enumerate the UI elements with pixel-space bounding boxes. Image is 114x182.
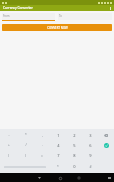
- button[interactable]: Back: [36, 175, 42, 181]
- staticText: Currency Converter: [3, 6, 33, 10]
- button[interactable]: 1: [50, 130, 66, 140]
- staticText: /: [25, 143, 27, 147]
- button[interactable]: 6: [82, 140, 98, 150]
- button[interactable]: =: [34, 150, 50, 161]
- staticText: *: [57, 165, 59, 169]
- button[interactable]: 7: [50, 150, 66, 161]
- button[interactable]: CONVERT NOW: [2, 24, 112, 31]
- staticText: 7: [57, 153, 60, 158]
- button[interactable]: Home: [57, 175, 63, 181]
- staticText: 4: [57, 143, 60, 148]
- button[interactable]: (: [0, 150, 17, 161]
- button[interactable]: From: [2, 13, 55, 21]
- staticText: ): [25, 154, 26, 158]
- button[interactable]: 5: [66, 140, 82, 150]
- button[interactable]: Enter: [98, 140, 114, 150]
- button[interactable]: 8: [66, 150, 82, 161]
- staticText: CONVERT NOW: [47, 26, 68, 30]
- staticText: -: [8, 133, 10, 137]
- button[interactable]: 4: [50, 140, 66, 150]
- button[interactable]: Recent apps: [76, 175, 82, 181]
- staticText: *: [25, 133, 27, 137]
- staticText: +: [8, 143, 10, 147]
- button[interactable]: /: [17, 140, 34, 150]
- button[interactable]: 0: [66, 161, 82, 172]
- staticText: 0: [73, 164, 76, 169]
- button[interactable]: 3: [82, 130, 98, 140]
- staticText: ,: [42, 133, 43, 137]
- staticText: 3: [89, 133, 92, 138]
- button[interactable]: *: [50, 161, 66, 172]
- button[interactable]: 9: [82, 150, 98, 161]
- staticText: 2: [73, 133, 76, 138]
- staticText: #: [89, 165, 92, 169]
- staticText: From: [3, 14, 10, 18]
- button[interactable]: Hide keyboard: [107, 175, 112, 180]
- button[interactable]: ): [17, 150, 34, 161]
- button[interactable]: #: [82, 161, 98, 172]
- staticText: 9: [89, 153, 92, 158]
- button[interactable]: *: [17, 130, 34, 140]
- staticText: =: [41, 154, 43, 158]
- button[interactable]: Space: [0, 161, 50, 172]
- staticText: 6: [89, 143, 92, 148]
- staticText: To: [59, 14, 62, 18]
- staticText: .: [42, 143, 43, 147]
- button[interactable]: 2: [66, 130, 82, 140]
- staticText: 8: [73, 153, 76, 158]
- button[interactable]: +: [0, 140, 17, 150]
- staticText: 1: [57, 133, 60, 138]
- staticText: (: [8, 154, 9, 158]
- button[interactable]: Backspace: [98, 130, 114, 140]
- button[interactable]: To: [58, 13, 112, 20]
- staticText: 5: [73, 143, 76, 148]
